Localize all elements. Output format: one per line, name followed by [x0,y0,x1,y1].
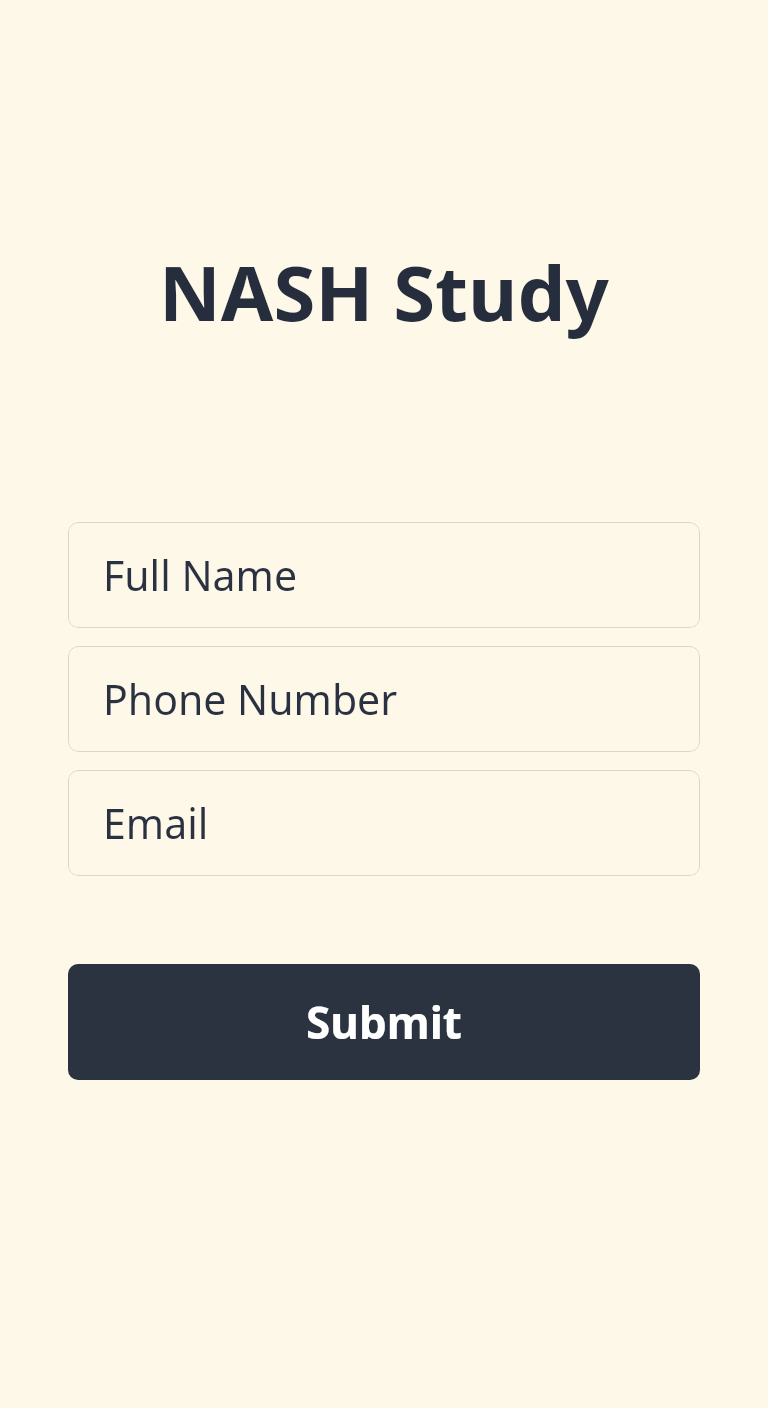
staticText: Phone Number [103,671,398,727]
button[interactable]: Email [68,770,700,876]
button[interactable]: Submit [68,964,700,1080]
staticText: Submit [306,992,462,1052]
staticText: Email [103,795,209,851]
button[interactable]: Full Name [68,522,700,628]
staticText: Full Name [103,547,298,603]
staticText: NASH Study [159,240,609,344]
button[interactable]: Phone Number [68,646,700,752]
